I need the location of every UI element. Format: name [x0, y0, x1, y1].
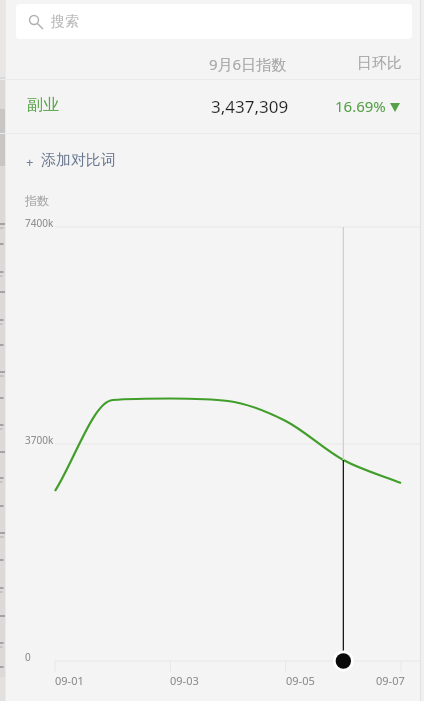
- button[interactable]: +: [0, 134, 424, 180]
- button[interactable]: 副业: [0, 80, 424, 133]
- staticText: +: [26, 153, 34, 171]
- staticText: 09-07: [376, 673, 405, 688]
- staticText: 09-01: [55, 673, 84, 688]
- staticText: 指数: [25, 193, 49, 208]
- staticText: 3700k: [25, 433, 54, 447]
- staticText: 添加对比词: [41, 151, 116, 170]
- staticText: 日环比: [357, 54, 402, 73]
- staticText: 16.69%: [335, 96, 386, 116]
- staticText: 0: [25, 650, 31, 664]
- button[interactable]: 搜索: [16, 4, 412, 39]
- staticText: 搜索: [51, 13, 79, 31]
- staticText: 7400k: [25, 216, 54, 230]
- staticText: 09-03: [170, 673, 199, 688]
- staticText: 09-05: [286, 673, 315, 688]
- staticText: 9月6日指数: [209, 54, 287, 74]
- staticText: 3,437,309: [211, 95, 289, 118]
- button[interactable]: Navigation drawer: [0, 0, 6, 701]
- staticText: 副业: [27, 95, 59, 115]
